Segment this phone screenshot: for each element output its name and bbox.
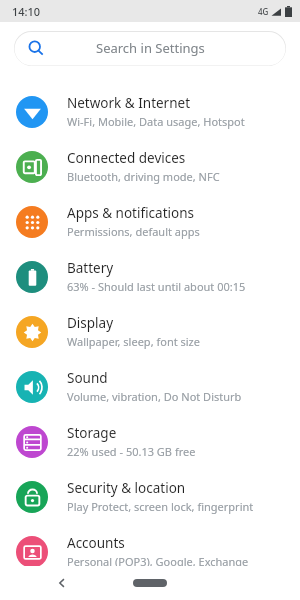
staticText: Apps & notifications xyxy=(67,204,194,222)
staticText: Accounts xyxy=(67,534,125,552)
staticText: Battery xyxy=(67,259,114,277)
button[interactable]: Storage xyxy=(0,414,300,469)
button[interactable]: Security & location xyxy=(0,469,300,524)
button[interactable]: Apps & notifications xyxy=(0,194,300,249)
staticText: Bluetooth, driving mode, NFC xyxy=(67,169,220,184)
button[interactable]: Search in Settings xyxy=(14,30,286,66)
button[interactable]: Connected devices xyxy=(0,139,300,194)
staticText: 63% - Should last until about 00:15 xyxy=(67,279,246,294)
button[interactable]: Accounts xyxy=(0,524,300,579)
staticText: Search in Settings xyxy=(96,39,205,57)
staticText: Connected devices xyxy=(67,149,186,167)
staticText: Wallpaper, sleep, font size xyxy=(67,334,200,349)
button[interactable]: Home xyxy=(124,571,176,595)
staticText: Network & Internet xyxy=(67,94,191,112)
button[interactable]: Network & Internet xyxy=(0,84,300,139)
staticText: Storage xyxy=(67,424,117,442)
staticText: 22% used - 50.13 GB free xyxy=(67,444,196,459)
staticText: Wi-Fi, Mobile, Data usage, Hotspot xyxy=(67,114,245,129)
staticText: Display xyxy=(67,314,114,332)
staticText: 14:10 xyxy=(12,4,41,19)
button[interactable]: Display xyxy=(0,304,300,359)
button[interactable]: Back xyxy=(48,569,76,597)
staticText: Play Protect, screen lock, fingerprint xyxy=(67,499,254,514)
button[interactable]: Battery xyxy=(0,249,300,304)
staticText: Permissions, default apps xyxy=(67,224,200,239)
staticText: Personal (POP3), Google, Exchange xyxy=(67,554,249,569)
button[interactable]: Sound xyxy=(0,359,300,414)
staticText: 4G xyxy=(258,6,269,17)
staticText: Volume, vibration, Do Not Disturb xyxy=(67,389,242,404)
staticText: Sound xyxy=(67,369,108,387)
staticText: Security & location xyxy=(67,479,186,497)
